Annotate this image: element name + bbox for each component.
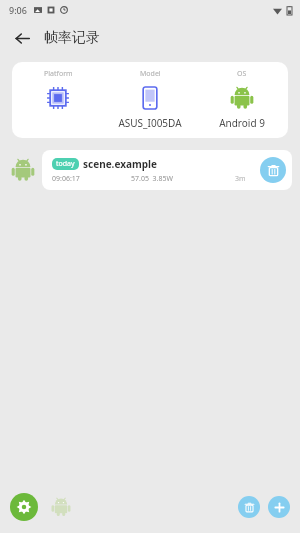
button[interactable]: Delete all bbox=[238, 496, 260, 518]
staticText: OS bbox=[237, 69, 247, 79]
staticText: 9:06 bbox=[9, 4, 27, 16]
staticText: 3m bbox=[235, 174, 246, 184]
staticText: Android 9 bbox=[219, 116, 265, 130]
staticText: 57.05 3.85W bbox=[131, 174, 173, 184]
staticText: ASUS_I005DA bbox=[118, 116, 182, 130]
staticText: 09:06:17 bbox=[52, 174, 80, 184]
button[interactable]: Settings bbox=[10, 493, 38, 521]
staticText: scene.example bbox=[83, 157, 157, 171]
button[interactable]: Platform bbox=[12, 62, 288, 138]
staticText: Model bbox=[140, 69, 161, 79]
button[interactable]: App filter bbox=[48, 494, 74, 520]
button[interactable]: Delete record bbox=[260, 157, 286, 183]
button[interactable]: today bbox=[42, 150, 292, 190]
staticText: today bbox=[56, 159, 75, 169]
staticText: 帧率记录 bbox=[44, 29, 100, 47]
button[interactable]: Back bbox=[8, 24, 36, 52]
staticText: Platform bbox=[44, 69, 73, 79]
button[interactable]: Add record bbox=[268, 496, 290, 518]
